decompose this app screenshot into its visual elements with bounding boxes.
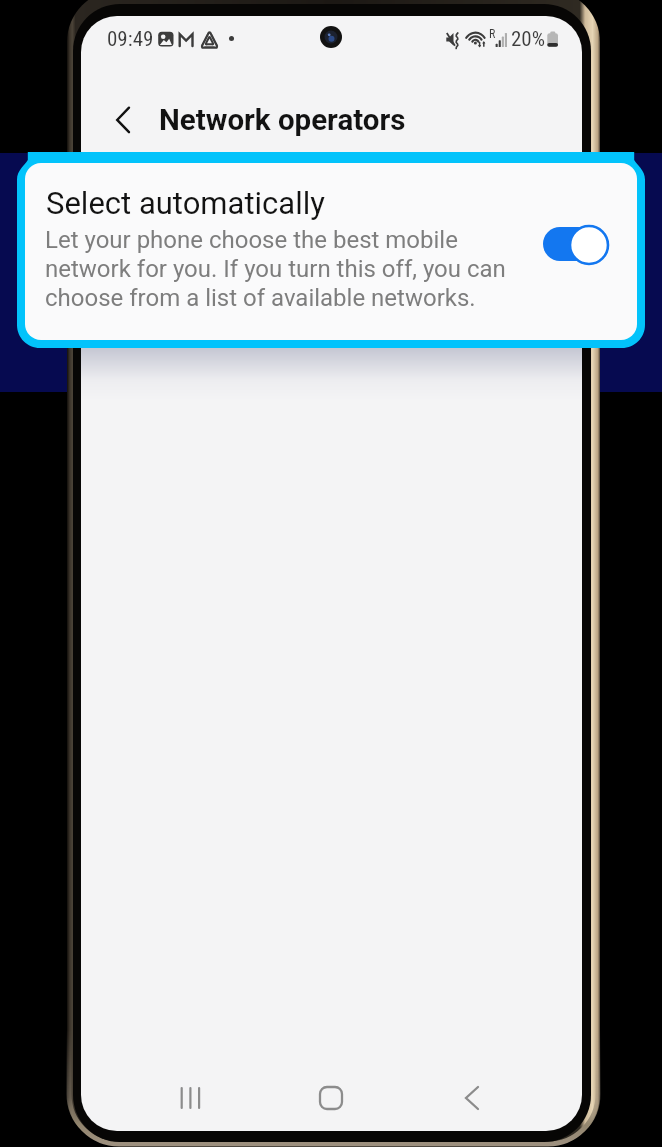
staticText: R — [489, 27, 496, 41]
staticText: Select automatically — [46, 185, 325, 221]
staticText: 20% — [511, 27, 546, 52]
staticText: Let your phone choose the best mobile ne… — [45, 226, 506, 312]
button[interactable]: Select automatically — [17, 152, 645, 348]
button[interactable]: Select automatically, on — [538, 220, 618, 270]
staticText: 09:49 — [107, 27, 154, 52]
button[interactable]: Back — [97, 96, 147, 144]
staticText: Network operators — [159, 103, 406, 138]
